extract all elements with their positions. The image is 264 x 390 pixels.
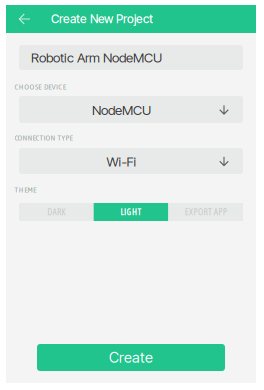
staticText: Create New Project	[51, 11, 153, 26]
staticText: LIGHT	[120, 207, 142, 217]
button[interactable]: DARK	[19, 203, 94, 221]
button[interactable]: EXPORT APP	[168, 203, 243, 221]
staticText: CHOOSE DEVICE	[14, 82, 66, 91]
button[interactable]: NodeMCU	[19, 96, 243, 123]
button[interactable]: LIGHT	[94, 203, 168, 221]
staticText: THEME	[14, 185, 36, 194]
staticText: Create	[109, 349, 153, 366]
staticText: Robotic Arm NodeMCU	[31, 49, 162, 66]
staticText: EXPORT APP	[185, 207, 227, 217]
button[interactable]: Back	[10, 5, 38, 33]
button[interactable]: Wi-Fi	[19, 148, 243, 174]
staticText: CONNECTION TYPE	[14, 133, 72, 142]
button[interactable]: Robotic Arm NodeMCU	[19, 45, 243, 70]
staticText: NodeMCU	[92, 102, 151, 118]
staticText: DARK	[47, 207, 66, 217]
button[interactable]: Create	[37, 344, 225, 371]
staticText: Wi-Fi	[106, 153, 136, 170]
